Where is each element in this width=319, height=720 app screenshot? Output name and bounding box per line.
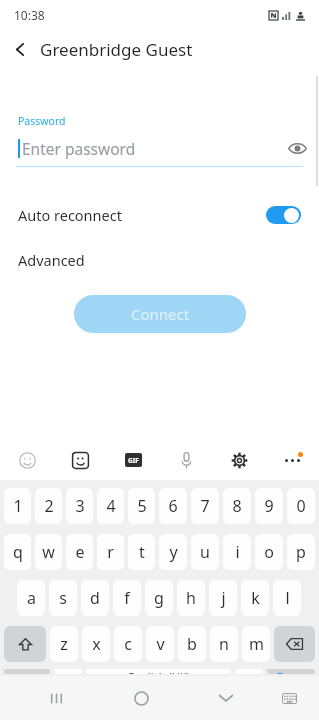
button[interactable]: y bbox=[159, 534, 187, 570]
staticText: i bbox=[235, 541, 240, 563]
button[interactable]: Recents bbox=[33, 676, 79, 720]
staticText: s bbox=[59, 587, 67, 609]
button[interactable]: Voice input bbox=[160, 440, 213, 480]
button[interactable]: Hide keyboard bbox=[203, 676, 249, 720]
staticText: 6 bbox=[168, 495, 178, 517]
button[interactable]: 8 bbox=[223, 488, 251, 524]
staticText: f bbox=[124, 587, 130, 609]
button[interactable]: Auto reconnect bbox=[0, 199, 319, 231]
button[interactable]: m bbox=[242, 626, 270, 662]
staticText: l bbox=[285, 587, 290, 609]
button[interactable]: z bbox=[50, 626, 78, 662]
button[interactable]: Emoji bbox=[0, 440, 54, 480]
staticText: d bbox=[90, 587, 100, 609]
button[interactable]: Shift bbox=[4, 626, 46, 662]
button[interactable]: 1 bbox=[4, 488, 31, 524]
button[interactable]: 9 bbox=[255, 488, 283, 524]
button[interactable]: Connect bbox=[74, 295, 246, 333]
staticText: n bbox=[219, 633, 229, 655]
button[interactable]: e bbox=[66, 534, 93, 570]
button[interactable]: s bbox=[49, 580, 77, 616]
staticText: 2 bbox=[44, 495, 54, 517]
button[interactable]: 7 bbox=[191, 488, 219, 524]
staticText: x bbox=[92, 633, 101, 655]
staticText: 4 bbox=[106, 495, 116, 517]
button[interactable]: d bbox=[81, 580, 109, 616]
button[interactable]: 4 bbox=[97, 488, 124, 524]
button[interactable]: Done bbox=[267, 669, 315, 674]
button[interactable]: i bbox=[223, 534, 251, 570]
staticText: u bbox=[200, 541, 210, 563]
staticText: v bbox=[156, 633, 165, 655]
button[interactable]: !#1 bbox=[4, 669, 50, 674]
button[interactable]: c bbox=[114, 626, 142, 662]
button[interactable]: l bbox=[273, 580, 301, 616]
staticText: h bbox=[186, 587, 196, 609]
button[interactable]: Back bbox=[0, 30, 40, 68]
button[interactable]: w bbox=[35, 534, 62, 570]
button[interactable]: More options bbox=[266, 440, 319, 480]
staticText: g bbox=[154, 587, 164, 609]
staticText: p bbox=[296, 541, 306, 563]
staticText: z bbox=[60, 633, 68, 655]
button[interactable]: Keyboard settings bbox=[213, 440, 266, 480]
staticText: q bbox=[13, 541, 23, 563]
staticText: k bbox=[251, 587, 260, 609]
staticText: y bbox=[169, 541, 178, 563]
staticText: Password bbox=[18, 114, 66, 128]
button[interactable]: j bbox=[209, 580, 237, 616]
button[interactable]: x bbox=[82, 626, 110, 662]
staticText: a bbox=[27, 587, 36, 609]
button[interactable]: o bbox=[255, 534, 283, 570]
button[interactable]: q bbox=[4, 534, 31, 570]
button[interactable]: Enter password bbox=[0, 134, 319, 162]
staticText: c bbox=[124, 633, 132, 655]
button[interactable]: 2 bbox=[35, 488, 62, 524]
button[interactable]: n bbox=[210, 626, 238, 662]
staticText: w bbox=[42, 541, 55, 563]
button[interactable]: g bbox=[145, 580, 173, 616]
button[interactable]: Advanced bbox=[0, 245, 319, 275]
button[interactable]: English (UK) bbox=[86, 669, 231, 674]
button[interactable]: a bbox=[17, 580, 45, 616]
button[interactable]: b bbox=[178, 626, 206, 662]
staticText: Enter password bbox=[22, 138, 136, 159]
staticText: m bbox=[249, 633, 264, 655]
staticText: 5 bbox=[137, 495, 147, 517]
button[interactable]: Backspace bbox=[274, 626, 315, 662]
staticText: b bbox=[187, 633, 197, 655]
button[interactable]: Back bbox=[0, 30, 319, 68]
button[interactable]: v bbox=[146, 626, 174, 662]
staticText: Auto reconnect bbox=[18, 205, 122, 225]
button[interactable]: p bbox=[287, 534, 315, 570]
button[interactable]: GIF bbox=[107, 440, 160, 480]
button[interactable]: k bbox=[241, 580, 269, 616]
button[interactable]: Home bbox=[118, 676, 164, 720]
staticText: GIF bbox=[128, 456, 139, 465]
staticText: 8 bbox=[232, 495, 242, 517]
button[interactable]: Stickers bbox=[54, 440, 107, 480]
button[interactable]: Show password bbox=[279, 134, 315, 162]
button[interactable]: 6 bbox=[159, 488, 187, 524]
button[interactable]: h bbox=[177, 580, 205, 616]
staticText: Done bbox=[276, 669, 307, 674]
button[interactable]: Switch keyboard bbox=[271, 680, 307, 716]
button[interactable]: f bbox=[113, 580, 141, 616]
staticText: Greenbridge Guest bbox=[40, 38, 193, 61]
button[interactable]: 5 bbox=[128, 488, 155, 524]
button[interactable]: 0 bbox=[287, 488, 315, 524]
button[interactable]: t bbox=[128, 534, 155, 570]
staticText: Connect bbox=[131, 304, 190, 324]
staticText: e bbox=[75, 541, 85, 563]
staticText: 3 bbox=[75, 495, 85, 517]
staticText: o bbox=[264, 541, 274, 563]
button[interactable]: r bbox=[97, 534, 124, 570]
staticText: 9 bbox=[264, 495, 274, 517]
button[interactable]: 3 bbox=[66, 488, 93, 524]
button[interactable]: u bbox=[191, 534, 219, 570]
